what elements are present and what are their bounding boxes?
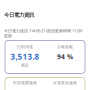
- staticText: 日前用電: [17, 44, 33, 49]
- staticText: 今日電力資訊: [4, 12, 34, 18]
- staticText: 申請電費服務: [13, 80, 37, 85]
- staticText: 今日電力資訊 114.05.21 (資訊更新時間 11:20) 更新: [4, 28, 82, 38]
- staticText: 水電查詢服務: [53, 80, 77, 85]
- staticText: 94 %: [57, 52, 73, 61]
- staticText: 萬瓩: [21, 63, 29, 68]
- staticText: 3,513.8: [10, 51, 39, 62]
- staticText: 尖峰負載: [57, 44, 73, 49]
